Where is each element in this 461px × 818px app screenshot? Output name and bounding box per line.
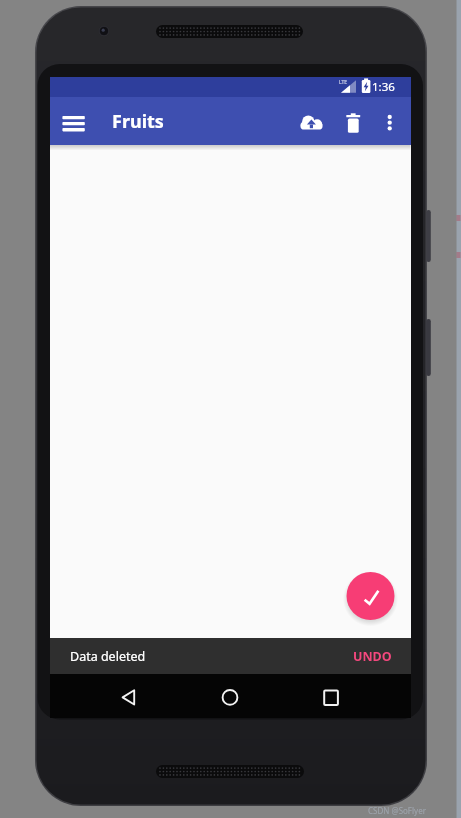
staticText: 1:36 [372, 79, 395, 95]
button[interactable] [332, 100, 374, 144]
button[interactable] [374, 100, 407, 144]
button[interactable] [55, 99, 99, 143]
button[interactable] [209, 676, 250, 717]
staticText: UNDO [353, 648, 392, 665]
button[interactable] [339, 565, 402, 628]
button[interactable]: UNDO [349, 638, 395, 675]
button[interactable] [310, 676, 351, 717]
staticText: Data deleted [70, 648, 146, 665]
button[interactable] [108, 676, 149, 717]
staticText: Fruits [112, 109, 164, 134]
button[interactable] [290, 100, 332, 144]
staticText: LTE [339, 79, 348, 86]
staticText: CSDN @SoFlyer [368, 805, 426, 816]
